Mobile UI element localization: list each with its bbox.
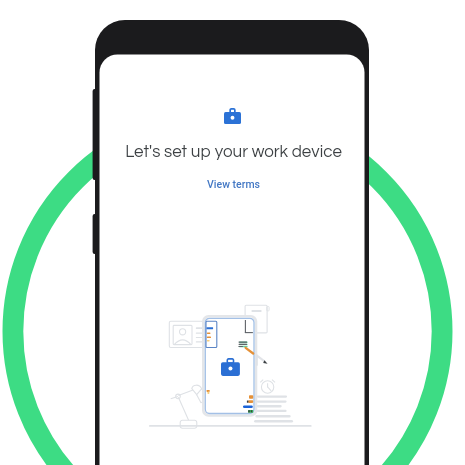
staticText: View terms bbox=[101, 178, 366, 190]
other: Work profile bbox=[224, 108, 241, 124]
button[interactable]: View terms bbox=[101, 178, 366, 190]
staticText: Let's set up your work device bbox=[101, 143, 366, 161]
